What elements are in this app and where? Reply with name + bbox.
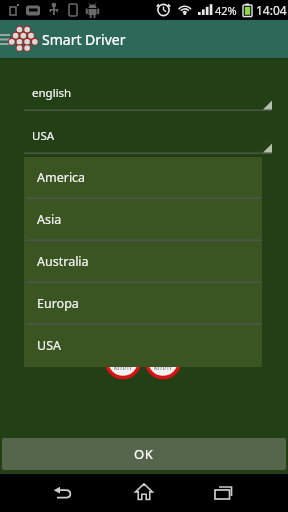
- staticText: Australia: [37, 253, 89, 270]
- button[interactable]: Recents: [204, 476, 244, 510]
- button[interactable]: USA: [24, 325, 262, 367]
- staticText: USA: [32, 128, 55, 144]
- button[interactable]: english: [24, 85, 272, 111]
- button[interactable]: Europa: [24, 283, 262, 325]
- button[interactable]: America: [24, 157, 262, 199]
- staticText: 42%: [215, 3, 237, 18]
- staticText: km/h: [154, 363, 172, 373]
- staticText: USA: [37, 337, 61, 354]
- staticText: english: [32, 85, 72, 101]
- staticText: 14:04: [256, 2, 287, 18]
- staticText: Europa: [37, 295, 79, 312]
- button[interactable]: Asia: [24, 199, 262, 241]
- button[interactable]: Home: [124, 474, 164, 508]
- staticText: km/h: [114, 363, 132, 373]
- button[interactable]: Menu: [0, 20, 12, 58]
- button[interactable]: USA: [24, 128, 272, 154]
- staticText: OK: [134, 445, 154, 463]
- staticText: Asia: [37, 211, 62, 228]
- staticText: America: [37, 169, 86, 186]
- staticText: Smart Driver: [42, 30, 126, 49]
- button[interactable]: Back: [44, 476, 84, 510]
- button[interactable]: Australia: [24, 241, 262, 283]
- button[interactable]: OK: [2, 438, 286, 470]
